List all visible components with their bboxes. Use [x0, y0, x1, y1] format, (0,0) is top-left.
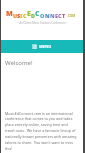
button[interactable]: MusicEdConnect.com home [6, 9, 76, 19]
staticText: S [17, 12, 20, 19]
staticText: N [45, 12, 50, 19]
staticText: E [55, 12, 58, 19]
staticText: C [23, 12, 27, 19]
staticText: D [31, 12, 35, 19]
staticText: M [6, 9, 13, 19]
staticText: T [62, 12, 66, 19]
staticText: N [50, 12, 55, 19]
staticText: O [40, 12, 45, 19]
staticText: U [13, 12, 17, 19]
other: Menu [32, 44, 37, 49]
staticText: Welcome! [5, 59, 33, 67]
staticText: .COM [67, 14, 76, 18]
staticText: I [20, 12, 23, 19]
staticText: C [58, 12, 62, 19]
staticText: ~ An Online Music Teachers Conference ~ [17, 21, 68, 25]
button[interactable]: Menu [1, 40, 83, 53]
staticText: MENU [39, 44, 52, 49]
staticText: C [35, 9, 40, 19]
staticText: MusicEdConnect.com is an international c… [5, 111, 78, 151]
staticText: E [27, 9, 31, 19]
